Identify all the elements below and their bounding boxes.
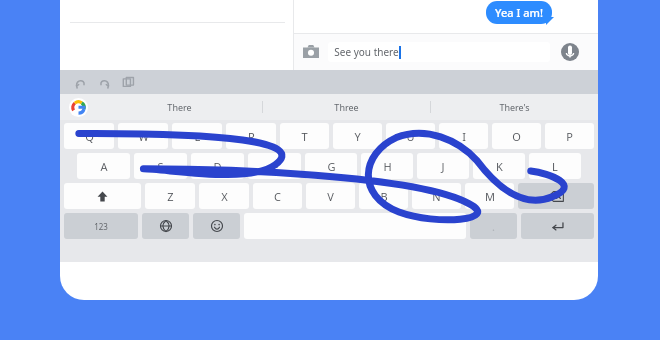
button[interactable]: M	[465, 183, 514, 209]
button[interactable]: See you there	[328, 42, 550, 62]
staticText: V	[327, 189, 334, 204]
button[interactable]: Space	[244, 213, 466, 239]
staticText: .	[492, 219, 495, 234]
button[interactable]: N	[412, 183, 461, 209]
button[interactable]: Change language	[142, 213, 189, 239]
button[interactable]: Undo	[68, 70, 92, 94]
staticText: G	[327, 159, 336, 174]
button[interactable]: Redo	[92, 70, 116, 94]
button[interactable]: Google	[60, 94, 96, 120]
staticText: D	[213, 159, 222, 174]
staticText: X	[221, 189, 228, 204]
staticText: C	[274, 189, 281, 204]
button[interactable]: J	[417, 153, 469, 179]
button[interactable]: There	[96, 94, 262, 120]
staticText: Z	[167, 189, 174, 204]
button[interactable]: G	[305, 153, 357, 179]
staticText: I	[462, 129, 466, 144]
button[interactable]: S	[134, 153, 187, 179]
button[interactable]: V	[306, 183, 355, 209]
staticText: U	[406, 129, 415, 144]
button[interactable]: Y	[333, 123, 382, 149]
button[interactable]: I	[439, 123, 488, 149]
button[interactable]: Shift	[64, 183, 141, 209]
button[interactable]: Emoji	[193, 213, 240, 239]
button[interactable]: H	[361, 153, 413, 179]
button[interactable]: B	[359, 183, 408, 209]
staticText: Y	[354, 129, 361, 144]
staticText: W	[138, 129, 149, 144]
staticText: R	[248, 129, 255, 144]
button[interactable]: Backspace	[518, 183, 594, 209]
staticText: Q	[85, 129, 94, 144]
staticText: K	[496, 159, 503, 174]
staticText: F	[272, 159, 278, 174]
staticText: E	[194, 129, 201, 144]
staticText: There's	[499, 101, 530, 113]
button[interactable]: Numbers	[64, 213, 138, 239]
button[interactable]: Three	[263, 94, 430, 120]
staticText: Yea I am!	[495, 5, 543, 20]
button[interactable]: C	[253, 183, 302, 209]
staticText: Three	[334, 101, 359, 113]
button[interactable]: Copy	[116, 70, 140, 94]
staticText: J	[441, 159, 445, 174]
staticText: M	[485, 189, 495, 204]
button[interactable]: T	[280, 123, 329, 149]
staticText: N	[432, 189, 441, 204]
staticText: L	[552, 159, 558, 174]
staticText: There	[167, 101, 192, 113]
button[interactable]: P	[545, 123, 594, 149]
button[interactable]: Yea I am!	[486, 1, 552, 24]
staticText: H	[383, 159, 392, 174]
staticText: A	[100, 159, 108, 174]
button[interactable]: Period	[470, 213, 517, 239]
staticText: See you there	[334, 45, 399, 59]
button[interactable]: Q	[64, 123, 114, 149]
staticText: 123	[94, 221, 108, 232]
button[interactable]: Z	[145, 183, 195, 209]
button[interactable]: E	[172, 123, 222, 149]
button[interactable]: Camera	[294, 35, 328, 69]
button[interactable]: Voice input	[559, 41, 581, 63]
button[interactable]: R	[226, 123, 276, 149]
button[interactable]: K	[473, 153, 525, 179]
staticText: O	[512, 129, 521, 144]
button[interactable]: F	[248, 153, 301, 179]
button[interactable]: U	[386, 123, 435, 149]
button[interactable]: There's	[431, 94, 598, 120]
button[interactable]: O	[492, 123, 541, 149]
button[interactable]: D	[191, 153, 244, 179]
staticText: T	[301, 129, 308, 144]
button[interactable]: L	[529, 153, 581, 179]
button[interactable]: W	[118, 123, 168, 149]
staticText: S	[157, 159, 164, 174]
staticText: B	[380, 189, 388, 204]
button[interactable]: A	[77, 153, 130, 179]
button[interactable]: X	[199, 183, 249, 209]
staticText: P	[566, 129, 573, 144]
button[interactable]: Enter	[521, 213, 594, 239]
